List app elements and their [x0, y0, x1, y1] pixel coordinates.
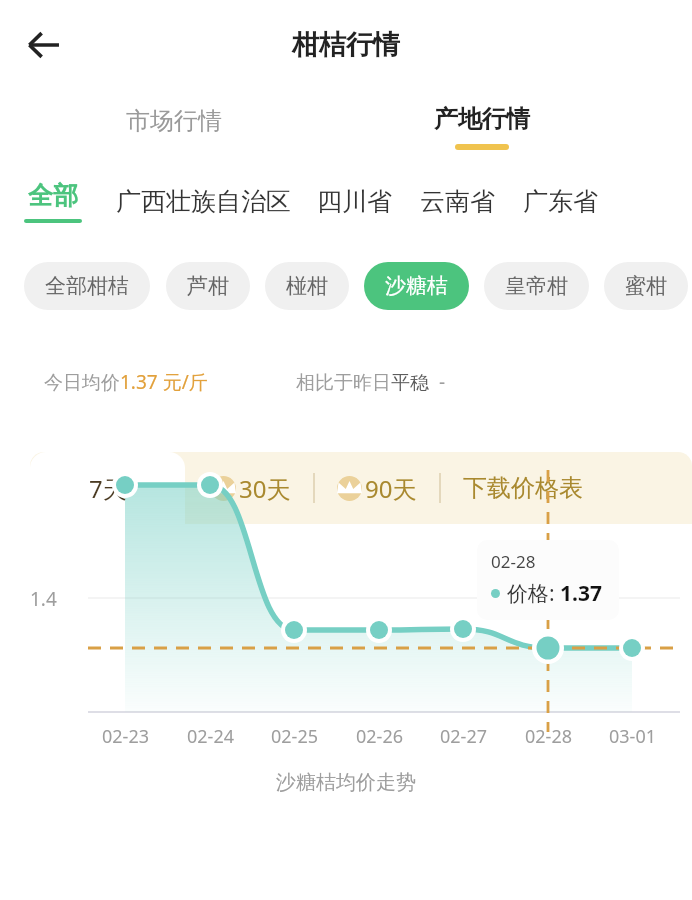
- staticText: 02-26: [356, 724, 403, 749]
- button[interactable]: 椪柑: [265, 262, 349, 310]
- staticText: 广西壮族自治区: [116, 186, 291, 217]
- staticText: 广东省: [523, 186, 598, 217]
- button[interactable]: 四川省: [315, 182, 394, 221]
- staticText: 云南省: [420, 186, 495, 217]
- staticText: 全部: [28, 180, 78, 211]
- button[interactable]: Back: [14, 16, 72, 74]
- button[interactable]: 广西壮族自治区: [114, 182, 293, 221]
- staticText: 02-23: [102, 724, 149, 749]
- staticText: 皇帝柑: [505, 273, 568, 299]
- staticText: 30天: [239, 472, 291, 505]
- staticText: 02-24: [187, 724, 234, 749]
- button[interactable]: 下载价格表: [461, 467, 585, 509]
- button[interactable]: 90天: [335, 466, 419, 511]
- staticText: 02-28: [525, 724, 572, 749]
- staticText: 沙糖桔: [385, 273, 448, 299]
- staticText: 沙糖桔均价走势: [276, 770, 416, 795]
- staticText: 下载价格表: [463, 473, 583, 503]
- staticText: 椪柑: [286, 273, 328, 299]
- button[interactable]: 30天: [209, 466, 293, 511]
- button[interactable]: 蜜柑: [604, 262, 688, 310]
- button[interactable]: 皇帝柑: [484, 262, 589, 310]
- staticText: 蜜柑: [625, 273, 667, 299]
- button[interactable]: 产地行情: [426, 100, 538, 154]
- button[interactable]: 7天: [30, 452, 185, 524]
- staticText: 02-27: [440, 724, 487, 749]
- staticText: 02-25: [271, 724, 318, 749]
- staticText: 价格: 1.37: [507, 579, 603, 608]
- staticText: 全部柑桔: [45, 273, 129, 299]
- staticText: 市场行情: [126, 106, 222, 136]
- staticText: 03-01: [609, 724, 656, 749]
- button[interactable]: 芦柑: [166, 262, 250, 310]
- staticText: 芦柑: [187, 273, 229, 299]
- staticText: 柑桔行情: [292, 28, 400, 62]
- staticText: 今日均价1.37 元/斤: [44, 369, 208, 395]
- button[interactable]: 沙糖桔: [364, 262, 469, 310]
- button[interactable]: 全部柑桔: [24, 262, 150, 310]
- staticText: 1.4: [30, 586, 57, 612]
- button[interactable]: 云南省: [418, 182, 497, 221]
- staticText: 相比于昨日平稳 -: [296, 369, 445, 395]
- button[interactable]: 全部: [22, 180, 84, 223]
- staticText: 02-28: [491, 550, 536, 573]
- staticText: 90天: [365, 472, 417, 505]
- staticText: 四川省: [317, 186, 392, 217]
- staticText: 产地行情: [434, 104, 530, 134]
- staticText: 7天: [89, 472, 127, 505]
- button[interactable]: 广东省: [521, 182, 600, 221]
- button[interactable]: 市场行情: [118, 102, 230, 140]
